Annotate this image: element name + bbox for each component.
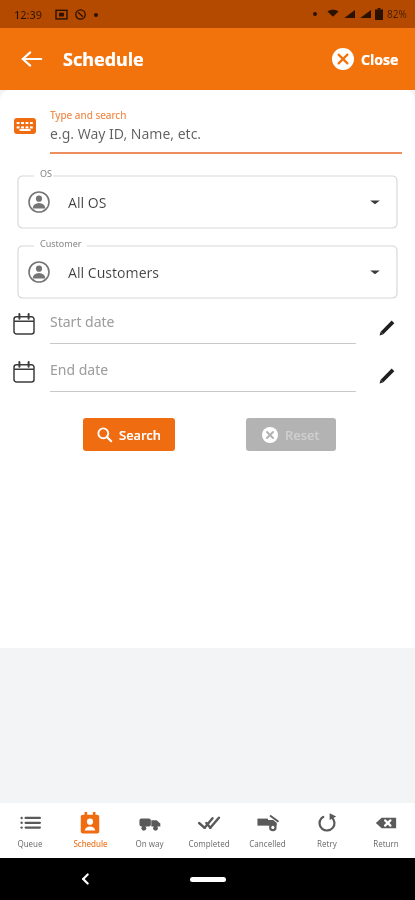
staticText: All OS xyxy=(68,193,369,212)
button[interactable]: Customer xyxy=(18,238,397,298)
button[interactable]: Back xyxy=(10,37,54,81)
staticText: Schedule xyxy=(73,838,108,849)
staticText: End date xyxy=(50,360,109,379)
staticText: Reset xyxy=(285,426,320,444)
button[interactable]: Completed xyxy=(179,803,238,858)
button[interactable]: Cancelled xyxy=(238,803,297,858)
staticText: On way xyxy=(135,838,164,849)
staticText: OS xyxy=(40,167,52,179)
button[interactable]: Search xyxy=(83,418,175,451)
button[interactable]: Reset xyxy=(246,418,336,451)
button[interactable]: Retry xyxy=(297,803,356,858)
staticText: Customer xyxy=(40,237,82,249)
staticText: Queue xyxy=(17,838,43,849)
staticText: Start date xyxy=(50,312,115,331)
button[interactable]: Close xyxy=(328,42,403,76)
button[interactable]: Back xyxy=(70,863,102,895)
staticText: 82% xyxy=(387,7,407,21)
staticText: Retry xyxy=(317,838,337,849)
button[interactable]: End date xyxy=(14,360,402,392)
staticText: Search xyxy=(119,426,161,444)
button[interactable]: Edit End date xyxy=(372,360,402,390)
staticText: All Customers xyxy=(68,263,369,282)
button[interactable]: Home xyxy=(190,877,226,882)
button[interactable]: Return xyxy=(356,803,415,858)
button[interactable]: OS xyxy=(18,168,397,228)
button[interactable]: Type and search xyxy=(14,108,402,154)
button[interactable]: Schedule xyxy=(60,803,120,858)
staticText: Close xyxy=(361,50,399,69)
staticText: 12:39 xyxy=(14,7,43,22)
button[interactable]: Start date xyxy=(14,312,402,344)
button[interactable]: Queue xyxy=(0,803,60,858)
button[interactable]: On way xyxy=(120,803,179,858)
staticText: Type and search xyxy=(50,108,127,122)
staticText: Completed xyxy=(188,838,230,849)
staticText: Return xyxy=(373,838,399,849)
staticText: Cancelled xyxy=(249,838,286,849)
staticText: Schedule xyxy=(63,47,144,72)
button[interactable]: Edit Start date xyxy=(372,312,402,342)
staticText: e.g. Way ID, Name, etc. xyxy=(50,124,202,143)
